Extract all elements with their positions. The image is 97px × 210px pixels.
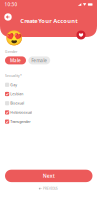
button[interactable]: Lesbian [5, 89, 92, 99]
button[interactable]: PREVIOUS [5, 186, 92, 192]
staticText: Female [31, 57, 47, 63]
button[interactable]: Bisexual [5, 99, 92, 108]
staticText: Male [10, 57, 21, 63]
staticText: Lesbian [10, 92, 23, 96]
staticText: Heterosexual [10, 110, 32, 115]
staticText: Sexuality* [5, 73, 22, 78]
button[interactable]: Gay [5, 80, 92, 89]
staticText: Bisexual [10, 101, 24, 105]
button[interactable]: Heterosexual [5, 108, 92, 117]
staticText: 10:30 [4, 1, 17, 8]
staticText: PREVIOUS [43, 186, 58, 191]
staticText: Transgender [10, 119, 30, 124]
staticText: Gay [10, 82, 17, 87]
button[interactable]: Next [5, 170, 92, 182]
button[interactable]: Male [5, 56, 26, 64]
staticText: 😍 [5, 29, 23, 46]
button[interactable]: Back [3, 12, 12, 21]
staticText: Gender [5, 49, 17, 54]
button[interactable]: Transgender [5, 117, 92, 126]
staticText: Create Your Account [20, 17, 77, 25]
staticText: Next [43, 172, 55, 179]
button[interactable]: Female [28, 56, 50, 64]
